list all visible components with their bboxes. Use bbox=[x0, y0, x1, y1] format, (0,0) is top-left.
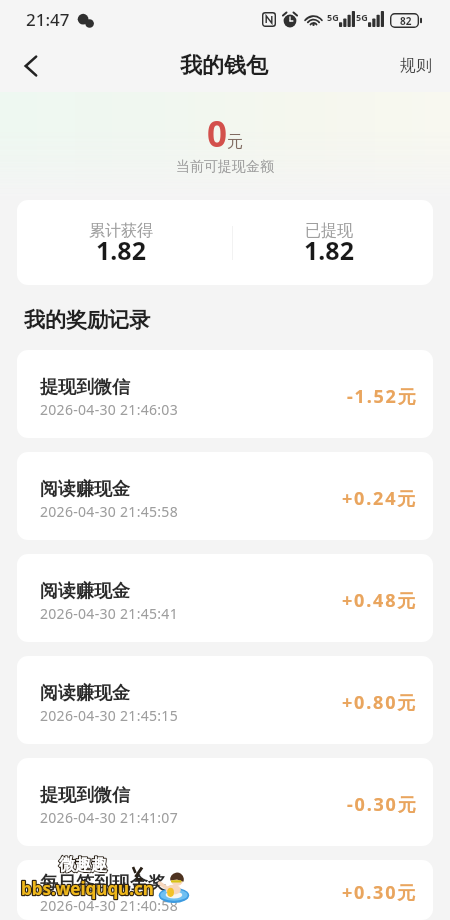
staticText: 微趣趣 bbox=[59, 855, 107, 875]
staticText: 1.82 bbox=[304, 233, 354, 267]
staticText: 2026-04-30 21:45:58 bbox=[40, 502, 178, 521]
staticText: 5G bbox=[356, 11, 368, 23]
staticText: 2026-04-30 21:45:15 bbox=[40, 706, 178, 725]
staticText: -1.52元 bbox=[347, 384, 418, 409]
staticText: 82 bbox=[400, 14, 412, 28]
button[interactable]: 阅读赚现金 bbox=[17, 554, 433, 642]
staticText: 每日签到现金奖 bbox=[40, 872, 166, 895]
staticText: +0.30元 bbox=[342, 880, 418, 905]
button[interactable]: 提现到微信 bbox=[17, 758, 433, 846]
staticText: 1.82 bbox=[96, 233, 146, 267]
staticText: 2026-04-30 21:41:07 bbox=[40, 808, 178, 827]
staticText: 提现到微信 bbox=[40, 376, 130, 399]
staticText: 2026-04-30 21:45:41 bbox=[40, 604, 178, 623]
button[interactable]: 每日签到现金奖 bbox=[17, 860, 433, 920]
button[interactable]: 规则 bbox=[382, 42, 450, 90]
staticText: 阅读赚现金 bbox=[40, 580, 130, 603]
staticText: 0元 bbox=[207, 110, 244, 158]
staticText: 21:47 bbox=[26, 8, 70, 31]
button[interactable]: 提现到微信 bbox=[17, 350, 433, 438]
staticText: 5G bbox=[327, 11, 339, 23]
staticText: +0.80元 bbox=[342, 690, 418, 715]
staticText: 我的钱包 bbox=[180, 52, 268, 80]
staticText: +0.48元 bbox=[342, 588, 418, 613]
staticText: 累计获得 bbox=[89, 221, 153, 241]
staticText: 2026-04-30 21:40:58 bbox=[40, 896, 178, 915]
staticText: bbs.weiququ.cn bbox=[21, 877, 154, 900]
staticText: 微趣趣 bbox=[59, 855, 107, 875]
button[interactable]: 阅读赚现金 bbox=[17, 656, 433, 744]
staticText: 阅读赚现金 bbox=[40, 682, 130, 705]
staticText: 规则 bbox=[400, 56, 432, 76]
staticText: bbs.weiququ.cn bbox=[21, 877, 154, 900]
staticText: 2026-04-30 21:46:03 bbox=[40, 400, 178, 419]
staticText: 阅读赚现金 bbox=[40, 478, 130, 501]
staticText: 当前可提现金额 bbox=[0, 158, 450, 176]
staticText: 我的奖励记录 bbox=[24, 307, 150, 333]
staticText: +0.24元 bbox=[342, 486, 418, 511]
button[interactable]: 阅读赚现金 bbox=[17, 452, 433, 540]
staticText: 已提现 bbox=[305, 221, 353, 241]
staticText: 提现到微信 bbox=[40, 784, 130, 807]
button[interactable]: Back bbox=[0, 40, 52, 92]
staticText: -0.30元 bbox=[347, 792, 418, 817]
